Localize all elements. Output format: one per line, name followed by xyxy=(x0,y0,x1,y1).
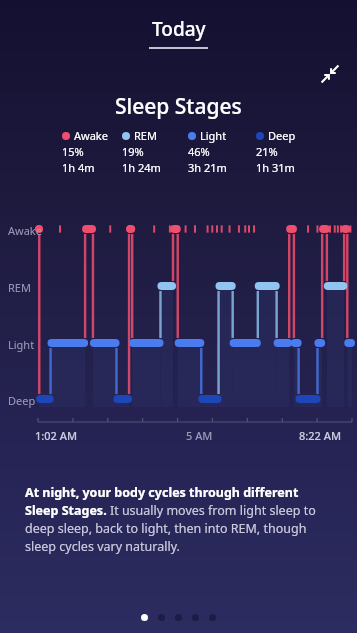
staticText: 1h 31m xyxy=(256,160,295,175)
staticText: 15% xyxy=(62,144,84,159)
staticText: 5 AM xyxy=(186,428,213,443)
staticText: Sleep Stages xyxy=(115,92,242,121)
staticText: 1h 4m xyxy=(62,160,95,175)
button[interactable]: Deep xyxy=(256,128,316,175)
staticText: 21% xyxy=(256,144,278,159)
staticText: 1:02 AM xyxy=(35,428,78,443)
button[interactable]: Today xyxy=(142,14,216,44)
button[interactable] xyxy=(209,614,216,621)
staticText: Deep xyxy=(8,393,36,408)
button[interactable]: Collapse xyxy=(315,59,345,89)
staticText: 3h 21m xyxy=(188,160,227,175)
staticText: 1h 24m xyxy=(122,160,161,175)
staticText: Awake xyxy=(8,223,42,238)
staticText: 19% xyxy=(122,144,144,159)
staticText: REM xyxy=(134,128,157,143)
staticText: REM xyxy=(8,280,31,295)
staticText: Deep xyxy=(268,128,296,143)
staticText: 46% xyxy=(188,144,210,159)
button[interactable] xyxy=(141,614,148,621)
staticText: Light xyxy=(8,337,35,352)
staticText: At night, your body cycles through diffe… xyxy=(25,484,332,555)
staticText: 8:22 AM xyxy=(299,428,342,443)
staticText: Light xyxy=(200,128,227,143)
button[interactable] xyxy=(192,614,199,621)
button[interactable] xyxy=(158,614,165,621)
staticText: Today xyxy=(152,16,206,42)
button[interactable]: Light xyxy=(188,128,256,175)
button[interactable]: REM xyxy=(122,128,188,175)
button[interactable]: Awake xyxy=(62,128,122,175)
button[interactable] xyxy=(175,614,182,621)
staticText: Awake xyxy=(74,128,108,143)
